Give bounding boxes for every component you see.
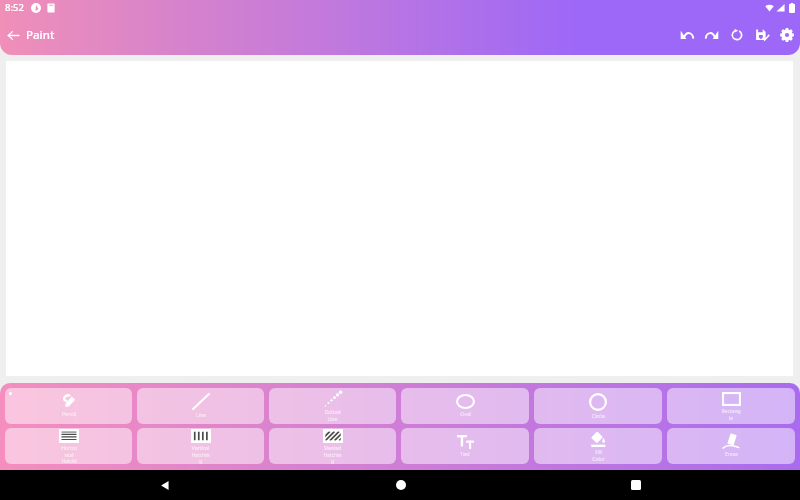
staticText: Dotted Line: [324, 409, 341, 422]
staticText: Paint: [26, 27, 55, 43]
button[interactable]: Horizo ntal Hatchi: [5, 428, 132, 464]
button[interactable]: Undo: [674, 15, 699, 55]
button[interactable]: Circle: [534, 388, 662, 424]
staticText: Rectang le: [721, 408, 741, 421]
staticText: Text: [460, 451, 470, 458]
staticText: Circle: [592, 413, 605, 420]
staticText: Oval: [460, 411, 471, 418]
staticText: Horizo ntal Hatchi: [61, 445, 77, 464]
staticText: Line: [196, 412, 206, 419]
button[interactable]: Back: [138, 470, 192, 500]
staticText: Pencil: [62, 411, 76, 418]
button[interactable]: Text: [401, 428, 529, 464]
staticText: Slanted Hatchin g: [323, 445, 342, 464]
button[interactable]: Oval: [401, 388, 529, 424]
button[interactable]: Settings: [774, 15, 799, 55]
button[interactable]: Reset: [724, 15, 749, 55]
button[interactable]: Redo: [699, 15, 724, 55]
button[interactable]: Pencil: [5, 388, 132, 424]
button[interactable]: Line: [137, 388, 264, 424]
button[interactable]: Erase: [667, 428, 795, 464]
staticText: Vertical Hatchin g: [191, 445, 210, 464]
button[interactable]: Slanted Hatchin g: [269, 428, 396, 464]
button[interactable]: Rectang le: [667, 388, 795, 424]
button[interactable]: Recents: [609, 470, 663, 500]
staticText: Erase: [725, 451, 738, 458]
button[interactable]: Vertical Hatchin g: [137, 428, 264, 464]
button[interactable]: Back: [0, 15, 26, 55]
staticText: 8:52: [5, 1, 24, 14]
staticText: Fill Color: [592, 449, 605, 462]
button[interactable]: Home: [374, 470, 428, 500]
button[interactable]: Save: [749, 15, 774, 55]
button[interactable]: Fill Color: [534, 428, 662, 464]
button[interactable]: Dotted Line: [269, 388, 396, 424]
